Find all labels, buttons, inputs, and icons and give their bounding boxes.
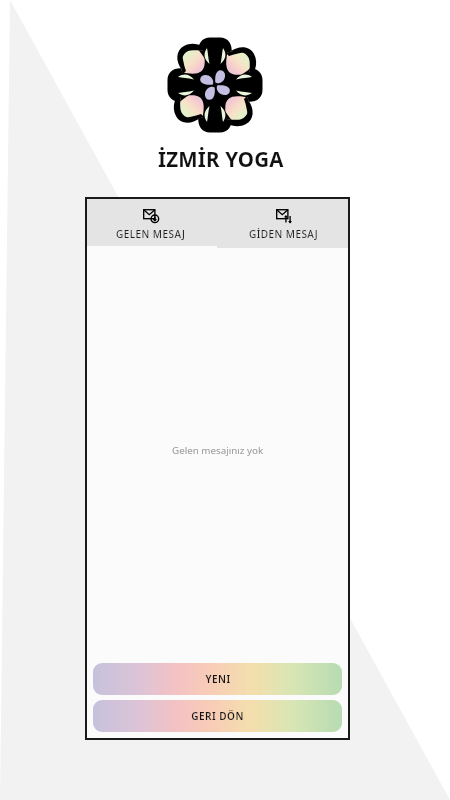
staticText: Gelen mesajınız yok [172, 444, 264, 457]
button[interactable]: GERI DÖN [93, 700, 342, 732]
staticText: GELEN MESAJ [116, 227, 186, 241]
button[interactable]: YENI [93, 663, 342, 695]
staticText: GİDEN MESAJ [249, 227, 319, 241]
staticText: YENI [205, 672, 231, 686]
button[interactable]: Gelen mesaj [85, 197, 217, 248]
staticText: GERI DÖN [191, 709, 244, 723]
button[interactable]: Giden mesaj [217, 197, 350, 248]
other: Gelen mesaj [143, 207, 159, 223]
other: İzmir Yoga logosu [162, 35, 268, 135]
other: Giden mesaj [276, 207, 292, 223]
staticText: İZMİR YOGA [158, 145, 284, 173]
